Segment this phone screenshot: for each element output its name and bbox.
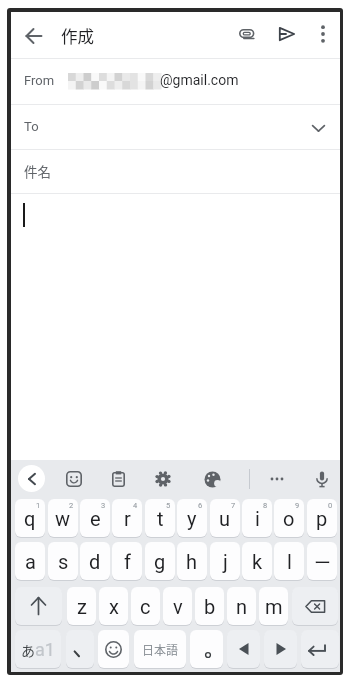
staticText: s xyxy=(58,550,69,573)
staticText: 1 xyxy=(36,501,41,510)
staticText: t xyxy=(157,507,164,530)
staticText: o xyxy=(283,507,295,530)
button[interactable]: h xyxy=(177,542,207,580)
button[interactable]: t xyxy=(145,499,175,537)
staticText: m xyxy=(265,595,283,618)
staticText: x xyxy=(109,595,119,618)
staticText: p xyxy=(316,507,328,530)
staticText: a1 xyxy=(35,639,55,660)
staticText: 9 xyxy=(295,501,300,510)
staticText: r xyxy=(124,507,131,530)
button[interactable]: f xyxy=(112,542,142,580)
button[interactable] xyxy=(11,105,340,149)
button[interactable] xyxy=(107,468,129,490)
button[interactable] xyxy=(227,630,260,668)
staticText: k xyxy=(252,550,263,573)
button[interactable]: ー xyxy=(307,542,337,580)
staticText: 3 xyxy=(101,501,106,510)
button[interactable]: r xyxy=(112,499,142,537)
staticText: 8 xyxy=(263,501,268,510)
button[interactable]: z xyxy=(67,587,96,625)
staticText: To xyxy=(24,119,39,134)
staticText: From xyxy=(24,73,55,88)
button[interactable] xyxy=(11,59,340,104)
staticText: g xyxy=(154,550,166,573)
staticText: あ xyxy=(21,640,35,660)
button[interactable]: l xyxy=(274,542,304,580)
button[interactable] xyxy=(201,468,223,490)
staticText: 2 xyxy=(69,501,74,510)
button[interactable] xyxy=(11,150,340,193)
button[interactable]: x xyxy=(99,587,128,625)
staticText: b xyxy=(204,595,216,618)
button[interactable] xyxy=(235,22,259,46)
staticText: f xyxy=(124,550,131,573)
button[interactable] xyxy=(152,468,174,490)
button[interactable] xyxy=(292,587,338,625)
staticText: l xyxy=(287,550,292,573)
button[interactable] xyxy=(311,468,333,490)
staticText: c xyxy=(140,595,151,618)
button[interactable] xyxy=(15,587,62,625)
button[interactable] xyxy=(63,468,85,490)
button[interactable]: u xyxy=(210,499,240,537)
button[interactable]: y xyxy=(177,499,207,537)
button[interactable]: j xyxy=(210,542,240,580)
button[interactable]: v xyxy=(163,587,192,625)
staticText: 7 xyxy=(231,501,236,510)
staticText: q xyxy=(24,507,36,530)
staticText: j xyxy=(223,550,228,573)
staticText: n xyxy=(236,595,248,618)
staticText: @gmail.com xyxy=(160,72,239,88)
staticText: 5 xyxy=(166,501,171,510)
staticText: v xyxy=(173,595,183,618)
button[interactable]: 日本語 xyxy=(134,630,186,668)
staticText: a xyxy=(25,550,36,573)
staticText: i xyxy=(255,507,260,530)
button[interactable] xyxy=(275,22,299,46)
staticText: u xyxy=(219,507,231,530)
staticText: 件名 xyxy=(24,161,51,181)
staticText: 作成 xyxy=(61,24,94,48)
staticText: 日本語 xyxy=(142,641,179,658)
button[interactable] xyxy=(66,630,94,668)
button[interactable]: a xyxy=(15,542,45,580)
button[interactable] xyxy=(190,630,223,668)
staticText: z xyxy=(77,595,87,618)
button[interactable] xyxy=(266,468,288,490)
staticText: ー xyxy=(314,549,331,574)
button[interactable]: あ xyxy=(15,630,61,668)
button[interactable] xyxy=(264,630,297,668)
staticText: e xyxy=(90,507,101,530)
button[interactable]: g xyxy=(145,542,175,580)
button[interactable]: n xyxy=(227,587,256,625)
button[interactable]: e xyxy=(80,499,110,537)
button[interactable] xyxy=(19,21,48,50)
button[interactable] xyxy=(301,630,339,668)
button[interactable] xyxy=(311,22,335,46)
button[interactable]: k xyxy=(242,542,272,580)
staticText: 4 xyxy=(133,501,138,510)
staticText: 0 xyxy=(328,501,333,510)
staticText: y xyxy=(187,507,197,530)
staticText: d xyxy=(89,550,101,573)
button[interactable]: s xyxy=(48,542,78,580)
button[interactable]: q xyxy=(15,499,45,537)
button[interactable]: p xyxy=(307,499,337,537)
staticText: w xyxy=(55,507,71,530)
button[interactable]: b xyxy=(195,587,224,625)
button[interactable]: c xyxy=(131,587,160,625)
button[interactable]: o xyxy=(274,499,304,537)
button[interactable] xyxy=(98,630,129,668)
button[interactable]: w xyxy=(48,499,78,537)
button[interactable] xyxy=(18,465,45,492)
staticText: 6 xyxy=(198,501,203,510)
button[interactable]: d xyxy=(80,542,110,580)
button[interactable]: i xyxy=(242,499,272,537)
button[interactable]: m xyxy=(259,587,288,625)
staticText: h xyxy=(186,550,198,573)
